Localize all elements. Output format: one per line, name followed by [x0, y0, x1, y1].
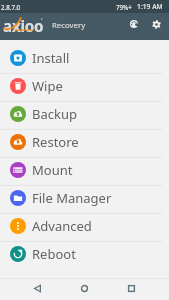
staticText: Reboot — [32, 245, 76, 263]
staticText: 2.8.7.0 — [1, 3, 21, 11]
button[interactable]: Advanced — [0, 214, 169, 242]
button[interactable]: Wipe — [0, 74, 169, 102]
button[interactable]: Theme — [123, 13, 145, 35]
button[interactable]: Recents — [119, 277, 144, 299]
button[interactable]: Backup — [0, 102, 169, 130]
staticText: Recovery — [52, 20, 86, 31]
button[interactable]: Home — [72, 277, 97, 299]
staticText: Backup — [32, 105, 77, 123]
staticText: File Manager — [32, 189, 112, 207]
staticText: axioo — [3, 16, 44, 35]
staticText: Advanced — [32, 217, 92, 235]
button[interactable]: Install — [0, 46, 169, 74]
staticText: Mount — [32, 161, 73, 179]
button[interactable]: File Manager — [0, 186, 169, 214]
button[interactable]: Mount — [0, 158, 169, 186]
staticText: 79%+ — [116, 3, 132, 11]
staticText: Restore — [32, 133, 79, 151]
button[interactable]: Back — [25, 277, 50, 299]
staticText: Wipe — [32, 77, 63, 95]
button[interactable]: Settings — [145, 13, 167, 35]
staticText: 1:19 AM — [137, 2, 163, 11]
button[interactable]: Reboot — [0, 242, 169, 270]
staticText: Install — [32, 49, 70, 67]
button[interactable]: Restore — [0, 130, 169, 158]
